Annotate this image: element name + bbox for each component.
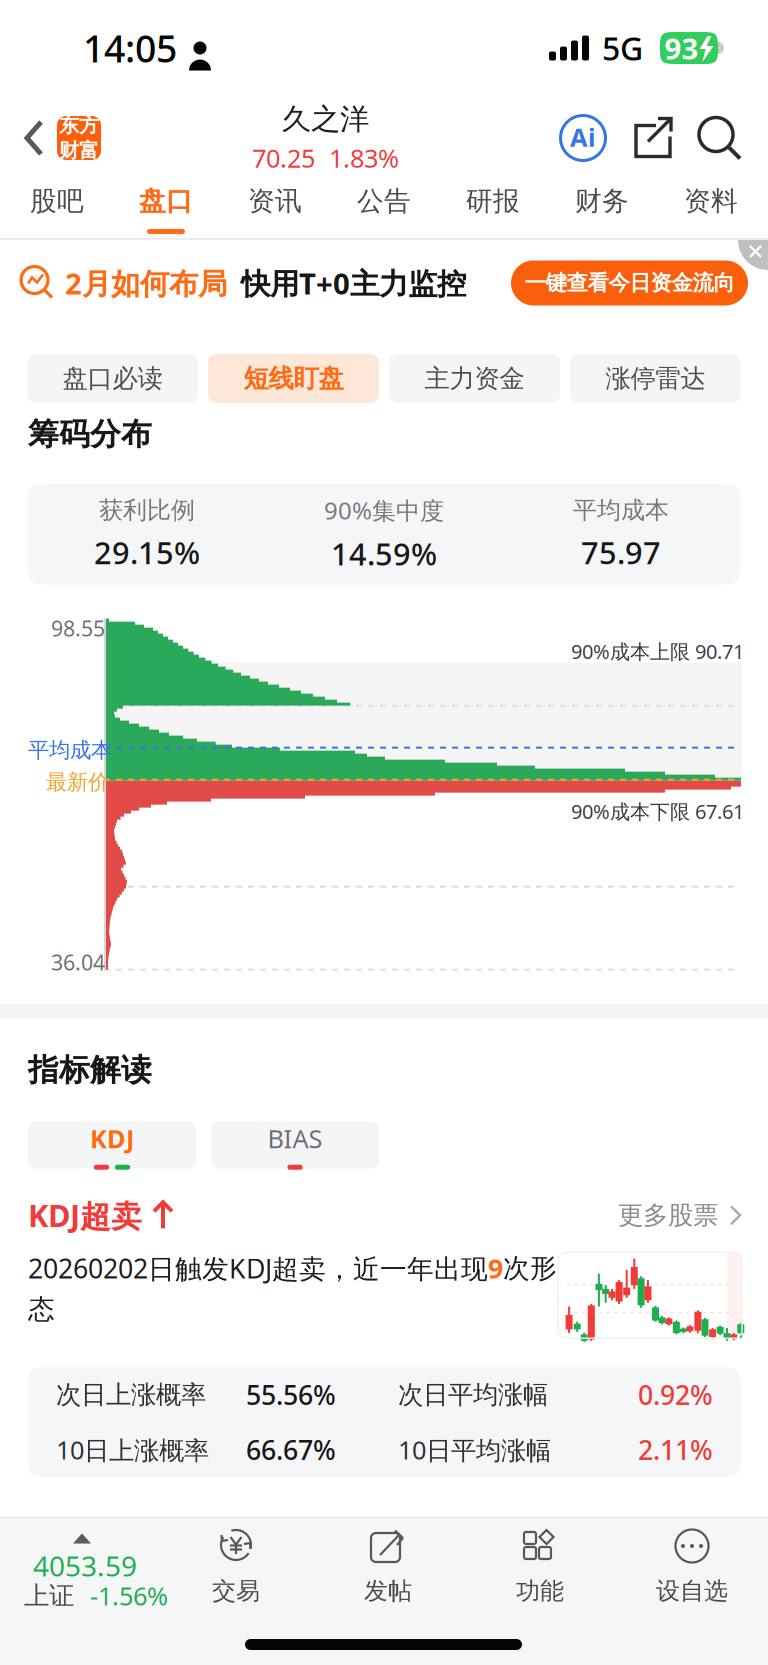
staticText: 资料: [684, 184, 738, 218]
staticText: 发帖: [364, 1576, 412, 1606]
staticText: 4053.59: [33, 1546, 137, 1585]
staticText: Ai: [570, 120, 596, 154]
button[interactable]: 主力资金: [389, 354, 560, 403]
staticText: 10日平均涨幅: [398, 1432, 551, 1467]
staticText: 75.97: [581, 531, 661, 573]
staticText: 90%集中度: [324, 494, 444, 527]
staticText: 90%成本下限 67.61: [571, 798, 744, 825]
button[interactable]: 设自选: [616, 1525, 768, 1618]
staticText: 20260202日触发KDJ超卖，近一年出现: [28, 1250, 488, 1286]
button[interactable]: BIAS: [211, 1121, 379, 1169]
button[interactable]: 发帖: [312, 1525, 464, 1618]
staticText: 研报: [466, 184, 520, 218]
staticText: KDJ: [90, 1121, 134, 1156]
staticText: 筹码分布: [28, 415, 152, 454]
staticText: 短线盯盘: [243, 362, 343, 394]
staticText: 1.83%: [329, 141, 399, 175]
button[interactable]: 短线盯盘: [208, 354, 379, 403]
staticText: 获利比例: [99, 495, 195, 525]
staticText: 2月如何布局: [65, 263, 227, 303]
staticText: 交易: [212, 1576, 260, 1606]
staticText: 平均成本: [28, 737, 112, 763]
button[interactable]: 关闭: [736, 240, 768, 272]
staticText: 上证: [24, 1580, 74, 1612]
button[interactable]: 资料: [656, 180, 765, 238]
button[interactable]: 分享: [632, 112, 675, 164]
staticText: 93: [664, 28, 698, 68]
staticText: 14.59%: [331, 533, 437, 574]
staticText: 次日平均涨幅: [398, 1379, 548, 1411]
staticText: 指标解读: [28, 1051, 152, 1089]
staticText: 次日上涨概率: [56, 1379, 206, 1411]
button[interactable]: KDJ: [28, 1121, 196, 1169]
staticText: 设自选: [656, 1576, 728, 1606]
staticText: 平均成本: [573, 495, 669, 525]
button[interactable]: 研报: [438, 180, 547, 238]
staticText: 9: [488, 1250, 503, 1286]
staticText: 70.25: [252, 141, 315, 175]
staticText: 10日上涨概率: [56, 1432, 209, 1467]
button[interactable]: 盘口: [111, 180, 220, 238]
staticText: 66.67%: [246, 1432, 336, 1468]
staticText: 0.92%: [638, 1377, 713, 1413]
button[interactable]: 一键查看今日资金流向: [511, 260, 748, 305]
staticText: 14:05: [83, 23, 177, 73]
staticText: 2.11%: [638, 1432, 713, 1468]
staticText: 55.56%: [246, 1377, 336, 1413]
button[interactable]: 资讯: [220, 180, 329, 238]
button[interactable]: 股吧: [2, 180, 111, 238]
staticText: 股吧: [30, 184, 84, 218]
staticText: 态: [28, 1292, 55, 1326]
staticText: 久之洋: [282, 101, 369, 138]
staticText: 更多股票: [618, 1199, 718, 1231]
staticText: 资讯: [248, 184, 302, 218]
button[interactable]: 盘口必读: [27, 354, 198, 403]
staticText: 36.04: [51, 948, 105, 977]
button[interactable]: 4053.59: [0, 1526, 160, 1616]
staticText: 快用T+0主力监控: [241, 263, 466, 303]
staticText: 盘口: [139, 184, 193, 218]
button[interactable]: AI 助手: [558, 112, 608, 164]
button[interactable]: 财务: [547, 180, 656, 238]
button[interactable]: 更多股票: [618, 1193, 768, 1237]
staticText: 次形: [503, 1251, 557, 1285]
staticText: KDJ超卖: [28, 1194, 142, 1236]
staticText: 5G: [602, 26, 643, 70]
staticText: 财务: [575, 184, 629, 218]
staticText: 盘口必读: [62, 362, 162, 394]
staticText: 29.15%: [94, 531, 200, 573]
staticText: 一键查看今日资金流向: [524, 270, 734, 296]
staticText: 90%成本上限 90.71: [571, 638, 744, 665]
staticText: 财富: [59, 138, 99, 163]
staticText: -1.56%: [90, 1578, 168, 1613]
staticText: 公告: [357, 184, 411, 218]
staticText: BIAS: [267, 1121, 322, 1156]
staticText: 主力资金: [424, 362, 524, 394]
staticText: 功能: [516, 1576, 564, 1606]
button[interactable]: 搜索: [699, 112, 742, 164]
staticText: 98.55: [51, 614, 105, 643]
button[interactable]: 返回: [0, 96, 117, 180]
staticText: 最新价: [46, 769, 109, 795]
staticText: 涨停雷达: [605, 362, 705, 394]
button[interactable]: 功能: [464, 1525, 616, 1618]
staticText: 东方: [59, 113, 99, 138]
button[interactable]: 涨停雷达: [570, 354, 741, 403]
button[interactable]: 公告: [329, 180, 438, 238]
button[interactable]: 交易: [160, 1525, 312, 1618]
